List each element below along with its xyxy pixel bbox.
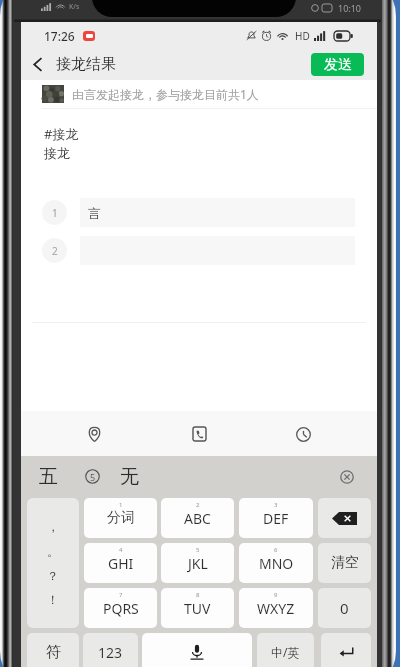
- button[interactable]: [318, 498, 371, 538]
- button[interactable]: Close keyboard: [336, 466, 358, 488]
- button[interactable]: ABC: [161, 498, 234, 538]
- staticText: 123: [98, 643, 123, 662]
- staticText: 清空: [331, 554, 359, 572]
- staticText: 发送: [324, 56, 352, 74]
- staticText: 8: [196, 591, 200, 599]
- button[interactable]: JKL: [161, 543, 234, 583]
- staticText: ，: [47, 519, 59, 534]
- button[interactable]: TUV: [161, 588, 234, 628]
- button[interactable]: 123: [83, 633, 138, 667]
- staticText: PQRS: [103, 599, 139, 618]
- button[interactable]: Contact card: [182, 417, 216, 451]
- staticText: 由言发起接龙，参与接龙目前共1人: [72, 86, 259, 102]
- staticText: HD: [295, 29, 310, 43]
- staticText: 0: [340, 598, 349, 618]
- button[interactable]: [142, 633, 252, 667]
- staticText: JKL: [188, 554, 208, 573]
- button[interactable]: Location: [77, 417, 111, 451]
- staticText: 9: [274, 591, 278, 599]
- staticText: 10:10: [338, 2, 362, 14]
- staticText: ABC: [184, 509, 211, 528]
- staticText: 1: [52, 206, 58, 220]
- staticText: 17:26: [44, 28, 75, 44]
- staticText: 言: [88, 205, 101, 221]
- button[interactable]: 言: [80, 198, 355, 227]
- button[interactable]: PQRS: [84, 588, 157, 628]
- staticText: MNO: [259, 554, 294, 573]
- button[interactable]: 分词: [84, 498, 157, 538]
- button[interactable]: 0: [318, 588, 371, 628]
- staticText: 五: [39, 465, 58, 489]
- staticText: 分词: [107, 509, 135, 527]
- staticText: 5: [90, 471, 96, 483]
- staticText: 符: [46, 643, 61, 662]
- button[interactable]: GHI: [84, 543, 157, 583]
- staticText: GHI: [108, 554, 134, 573]
- staticText: 3: [274, 501, 278, 509]
- staticText: 2: [196, 501, 200, 509]
- button[interactable]: ，: [27, 498, 79, 628]
- button[interactable]: 发送: [311, 53, 364, 76]
- staticText: 7: [119, 591, 123, 599]
- button[interactable]: Time: [286, 417, 320, 451]
- button[interactable]: [321, 633, 371, 667]
- button[interactable]: 符: [27, 633, 79, 667]
- staticText: #接龙: [44, 125, 79, 143]
- staticText: 4: [119, 546, 123, 554]
- button[interactable]: MNO: [239, 543, 313, 583]
- staticText: 中/英: [271, 644, 300, 660]
- staticText: 1: [119, 501, 123, 509]
- staticText: 接龙结果: [56, 55, 116, 74]
- button[interactable]: 清空: [318, 543, 371, 583]
- button[interactable]: DEF: [239, 498, 313, 538]
- staticText: 6: [274, 546, 278, 554]
- staticText: WXYZ: [257, 599, 295, 618]
- staticText: 2: [52, 244, 58, 258]
- button[interactable]: WXYZ: [239, 588, 313, 628]
- staticText: 。: [47, 544, 59, 559]
- staticText: 5: [196, 546, 200, 554]
- staticText: TUV: [184, 599, 211, 618]
- staticText: 接龙: [44, 145, 70, 161]
- staticText: 无: [120, 465, 139, 489]
- button[interactable]: 中/英: [257, 633, 314, 667]
- staticText: ！: [47, 592, 59, 607]
- staticText: ？: [47, 568, 59, 583]
- staticText: DEF: [263, 509, 289, 528]
- button[interactable]: Back: [21, 49, 54, 80]
- staticText: K/s: [69, 2, 80, 12]
